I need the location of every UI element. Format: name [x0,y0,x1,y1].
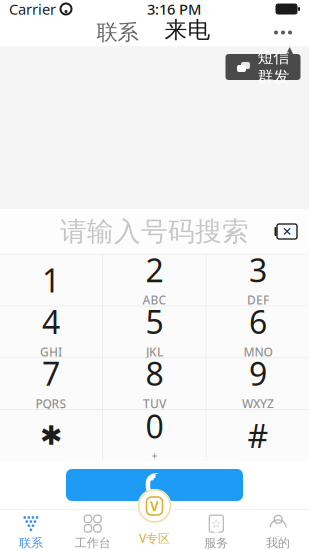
button[interactable]: Delete [264,211,304,251]
staticText: 7 [42,352,60,395]
button[interactable]: More options [261,18,305,46]
staticText: GHI [40,344,62,360]
staticText: # [247,414,268,457]
button[interactable]: ✱ [0,410,102,461]
staticText: 2 [145,248,163,291]
button[interactable]: 工作台 [62,509,124,550]
staticText: Carrier [9,0,56,19]
staticText: WXYZ [242,396,274,411]
button[interactable]: 联系 [90,19,144,46]
staticText: 我的 [266,536,290,550]
staticText: 5 [145,300,163,343]
staticText: 请输入号码搜索 [60,215,249,248]
button[interactable]: 来电 [156,19,218,46]
button[interactable]: 1 [0,255,102,306]
staticText: MNO [243,344,272,360]
staticText: TUV [143,396,166,411]
staticText: PQRS [36,396,67,411]
button[interactable]: 2 [103,255,206,306]
button[interactable]: 7 [0,358,102,409]
staticText: 0 [145,405,163,447]
staticText: ✱ [40,420,62,451]
button[interactable]: 5 [103,306,206,357]
button[interactable]: Call [66,469,243,501]
staticText: 联系 [96,19,138,46]
button[interactable]: V专区 [136,488,172,524]
staticText: 服务 [204,536,228,550]
button[interactable]: ☆ [185,509,247,550]
button[interactable]: 9 [207,358,309,409]
button[interactable]: 0 [103,410,206,461]
staticText: 3:16 PM [147,0,201,19]
staticText: ABC [142,292,166,308]
button[interactable]: 8 [103,358,206,409]
staticText: 1 [42,259,60,301]
staticText: 3 [249,248,267,291]
button[interactable]: 6 [207,306,309,357]
staticText: 联系 [19,536,43,550]
staticText: 来电 [164,16,210,44]
staticText: JKL [146,344,163,360]
button[interactable]: # [207,410,309,461]
staticText: 短信群发 [257,47,289,87]
button[interactable]: 3 [207,255,309,306]
staticText: 8 [145,352,163,395]
staticText: 9 [249,352,267,395]
staticText: 6 [249,300,267,343]
staticText: V专区 [139,530,170,546]
staticText: ☆ [211,517,222,530]
staticText: ▲ [285,44,294,57]
button[interactable]: 我的 [247,509,309,550]
staticText: V [150,497,159,515]
staticText: 4 [42,300,60,343]
staticText: + [151,448,157,462]
staticText: ✕ [282,225,292,238]
staticText: DEF [247,292,269,308]
staticText: 工作台 [75,536,111,550]
button[interactable]: 4 [0,306,102,357]
button[interactable]: 联系 [0,509,62,550]
